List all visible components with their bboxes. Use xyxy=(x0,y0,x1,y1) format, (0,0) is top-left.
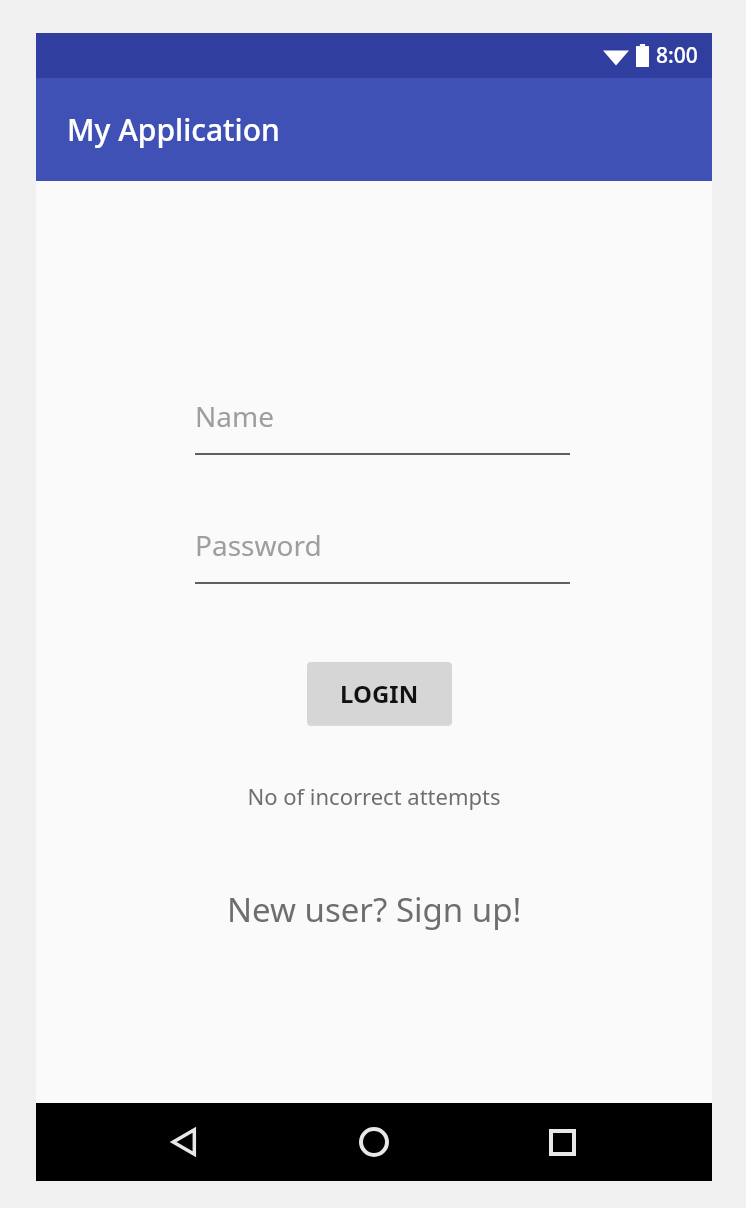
button[interactable]: LOGIN xyxy=(307,662,452,724)
staticText: New user? Sign up! xyxy=(227,887,522,932)
staticText: Password xyxy=(195,526,322,564)
staticText: Name xyxy=(195,397,274,435)
staticText: LOGIN xyxy=(340,677,419,710)
button[interactable]: Recent apps xyxy=(526,1106,598,1178)
button[interactable]: Password input field xyxy=(195,526,570,584)
button[interactable]: Back xyxy=(150,1106,222,1178)
button[interactable]: Name input field xyxy=(195,397,570,455)
staticText: 8:00 xyxy=(656,41,698,70)
button[interactable]: Home xyxy=(338,1106,410,1178)
staticText: No of incorrect attempts xyxy=(36,781,712,811)
button[interactable]: New user? Sign up! xyxy=(215,881,534,938)
staticText: My Application xyxy=(67,109,280,150)
